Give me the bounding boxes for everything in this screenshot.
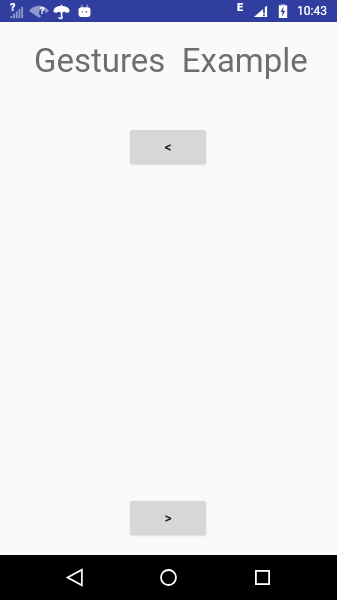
staticText: ? [10,1,16,14]
staticText: E [237,1,244,14]
button[interactable]: Recent apps [238,555,286,600]
staticText: Gestures Example [34,41,308,80]
staticText: 10:43 [297,4,327,18]
staticText: ? [40,6,45,17]
staticText: < [164,139,172,155]
button[interactable]: Home [145,555,193,600]
button[interactable]: Back [50,555,98,600]
button[interactable]: > [130,501,206,535]
button[interactable]: < [130,130,206,164]
staticText: > [164,510,172,526]
